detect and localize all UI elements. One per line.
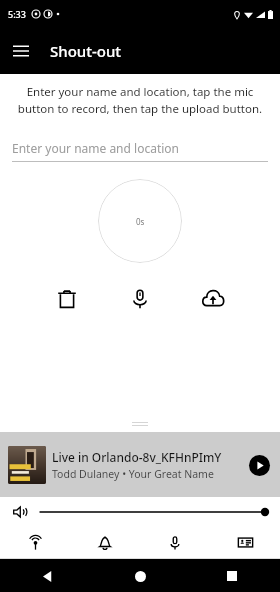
button[interactable]: Contact card (210, 527, 280, 558)
button[interactable]: Open navigation menu (6, 36, 36, 66)
button[interactable]: Broadcast (0, 527, 70, 558)
button[interactable]: Volume (10, 502, 30, 522)
button[interactable]: Notifications (70, 527, 140, 558)
button[interactable]: Delete recording (52, 284, 82, 314)
staticText: Live in Orlando-8v_KFHnPImY (52, 449, 222, 465)
staticText: Enter your name and location (12, 140, 179, 156)
button[interactable] (40, 502, 270, 522)
staticText: Enter your name and location, tap the mi… (14, 84, 266, 116)
staticText: 0s (136, 216, 145, 227)
staticText: 5:33 (8, 8, 26, 20)
button[interactable]: Live in Orlando-8v_KFHnPImY (0, 432, 280, 497)
button[interactable]: Recent apps (218, 562, 246, 590)
button[interactable]: 0s (98, 179, 182, 263)
staticText: Shout-out (50, 41, 122, 61)
button[interactable]: Play (246, 452, 272, 478)
button[interactable]: Record (125, 284, 155, 314)
button[interactable]: Enter your name and location (12, 140, 268, 162)
button[interactable]: Upload (198, 284, 228, 314)
staticText: Todd Dulaney • Your Great Name (52, 467, 214, 481)
button[interactable]: Back (34, 562, 62, 590)
button[interactable]: Home (126, 562, 154, 590)
button[interactable]: Record (140, 527, 210, 558)
